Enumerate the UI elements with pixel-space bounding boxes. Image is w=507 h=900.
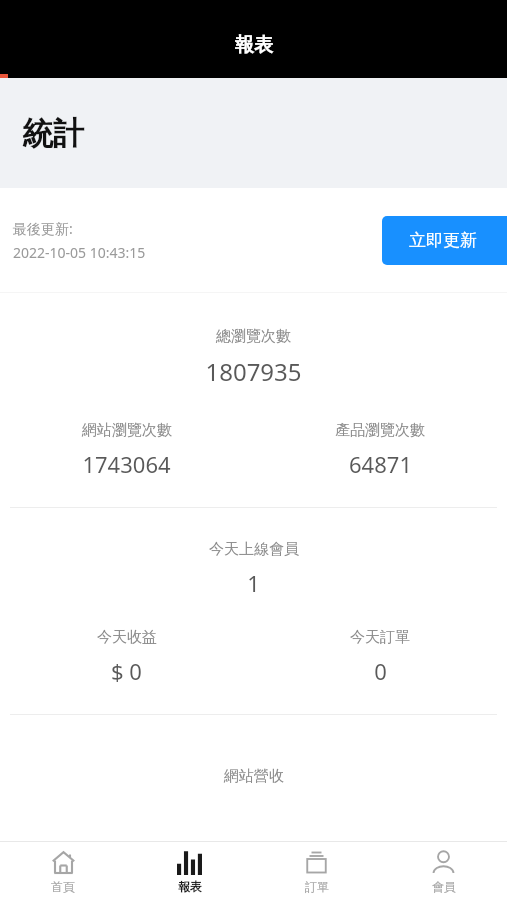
- staticText: 最後更新:: [13, 219, 73, 238]
- staticText: 1743064: [82, 449, 171, 479]
- staticText: 2022-10-05 10:43:15: [13, 243, 146, 262]
- staticText: 64871: [349, 449, 412, 479]
- staticText: 報表: [235, 33, 273, 57]
- staticText: 立即更新: [409, 230, 477, 251]
- button[interactable]: 訂單: [253, 842, 380, 900]
- staticText: 會員: [432, 879, 456, 894]
- staticText: 訂單: [305, 879, 329, 894]
- staticText: 今天收益: [97, 628, 157, 647]
- staticText: $ 0: [111, 656, 142, 686]
- button[interactable]: 報表: [126, 842, 253, 900]
- staticText: 總瀏覽次數: [216, 327, 291, 346]
- button[interactable]: 立即更新: [382, 216, 507, 265]
- staticText: 1: [247, 568, 260, 598]
- staticText: 0: [374, 656, 387, 686]
- button[interactable]: 會員: [380, 842, 507, 900]
- staticText: 網站瀏覽次數: [82, 421, 172, 440]
- button[interactable]: 首頁: [0, 842, 126, 900]
- staticText: 今天上線會員: [209, 540, 299, 559]
- staticText: 今天訂單: [350, 628, 410, 647]
- staticText: 首頁: [51, 879, 75, 894]
- staticText: 產品瀏覽次數: [335, 421, 425, 440]
- staticText: 網站營收: [224, 767, 284, 786]
- staticText: 1807935: [205, 355, 302, 388]
- staticText: 統計: [22, 114, 84, 153]
- staticText: 報表: [178, 879, 202, 894]
